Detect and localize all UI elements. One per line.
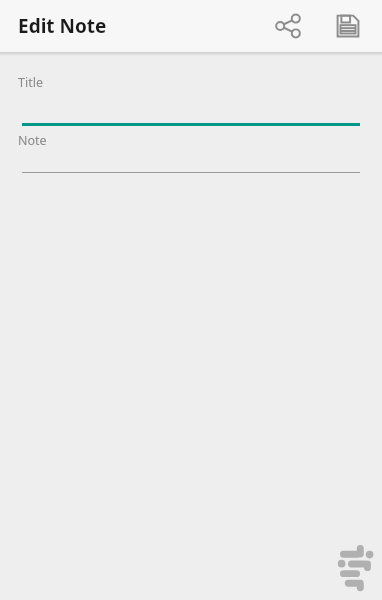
- button[interactable]: Note: [18, 132, 364, 173]
- staticText: Edit Note: [18, 13, 107, 39]
- button[interactable]: Share: [266, 4, 310, 48]
- staticText: Title: [18, 74, 43, 91]
- button[interactable]: Title: [18, 74, 364, 126]
- button[interactable]: Save: [326, 4, 370, 48]
- staticText: Note: [18, 132, 47, 149]
